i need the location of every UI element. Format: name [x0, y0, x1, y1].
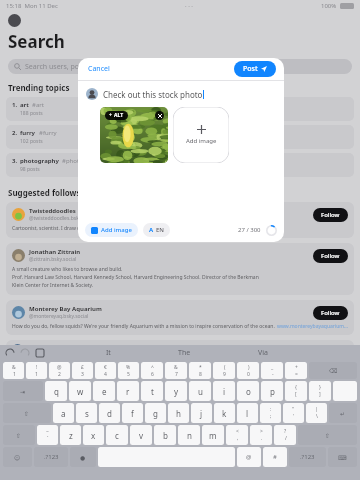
button[interactable]: Key	[333, 381, 357, 401]
button[interactable]: It	[102, 348, 115, 358]
button[interactable]: %	[118, 362, 139, 379]
button[interactable]: Tab	[3, 381, 43, 401]
button[interactable]: 1.	[6, 97, 354, 121]
button[interactable]: *	[189, 362, 211, 379]
button[interactable]: Follow	[313, 306, 348, 320]
button[interactable]: Dictation	[70, 447, 96, 467]
staticText: j	[200, 408, 203, 419]
button[interactable]: y	[165, 381, 187, 401]
button[interactable]: Twisteddoodles	[6, 202, 354, 238]
button[interactable]: ?	[274, 425, 296, 445]
button[interactable]: Profile	[8, 14, 21, 27]
button[interactable]: Monterey Bay Aquarium	[6, 300, 354, 335]
button[interactable]: b	[154, 425, 176, 445]
button[interactable]: @	[49, 362, 70, 379]
button[interactable]: a	[53, 403, 74, 423]
button[interactable]: u	[189, 381, 211, 401]
button[interactable]: Emoji	[3, 447, 32, 467]
button[interactable]: At sign	[237, 447, 261, 467]
button[interactable]: Jonathan Zittrain	[6, 243, 354, 295]
button[interactable]: Return	[329, 403, 357, 423]
button[interactable]: Follow	[313, 249, 348, 263]
button[interactable]: f	[122, 403, 143, 423]
button[interactable]: Via	[254, 348, 272, 358]
button[interactable]: c	[106, 425, 128, 445]
button[interactable]: Hide keyboard	[328, 447, 357, 467]
staticText: ,	[237, 435, 239, 442]
button[interactable]: ^	[141, 362, 163, 379]
button[interactable]: 2.	[6, 125, 354, 149]
staticText: photography	[20, 157, 59, 165]
button[interactable]: Search users, posts, feeds	[8, 59, 352, 74]
button[interactable]: Numbers	[289, 447, 326, 467]
button[interactable]: <	[226, 425, 248, 445]
button[interactable]: +	[105, 111, 128, 120]
button[interactable]: !	[26, 362, 47, 379]
button[interactable]: d	[99, 403, 120, 423]
button[interactable]: Backspace	[309, 362, 357, 379]
button[interactable]: w	[69, 381, 91, 401]
button[interactable]: q	[45, 381, 67, 401]
button[interactable]: Post	[234, 61, 276, 77]
button[interactable]: ~	[37, 425, 58, 445]
button[interactable]: Paste	[36, 349, 44, 357]
staticText: }	[319, 384, 321, 391]
button[interactable]: o	[237, 381, 259, 401]
button[interactable]: &	[3, 362, 24, 379]
button[interactable]: Follow	[313, 208, 348, 222]
button[interactable]: z	[60, 425, 81, 445]
button[interactable]: Numbers	[34, 447, 68, 467]
button[interactable]: {	[285, 381, 307, 401]
staticText: :	[270, 406, 272, 413]
button[interactable]: m	[202, 425, 224, 445]
button[interactable]: l	[237, 403, 258, 423]
button[interactable]: _	[261, 362, 283, 379]
button[interactable]: g	[145, 403, 166, 423]
button[interactable]: h	[168, 403, 189, 423]
button[interactable]: |	[306, 403, 327, 423]
button[interactable]: v	[130, 425, 152, 445]
staticText: +	[109, 112, 112, 119]
button[interactable]: Cancel	[86, 62, 112, 76]
button[interactable]: Redo	[21, 349, 29, 357]
button[interactable]: Add image	[173, 107, 229, 163]
button[interactable]: Hash	[263, 447, 287, 467]
button[interactable]: }	[309, 381, 331, 401]
button[interactable]: k	[214, 403, 235, 423]
button[interactable]: 3.	[6, 153, 354, 177]
button[interactable]: :	[260, 403, 281, 423]
button[interactable]: n	[178, 425, 200, 445]
button[interactable]: )	[237, 362, 259, 379]
button[interactable]: i	[213, 381, 235, 401]
button[interactable]: €	[95, 362, 116, 379]
button[interactable]: John Trasser, Jasso, suffering Philly sp…	[6, 340, 354, 362]
button[interactable]: Undo	[6, 349, 14, 357]
button[interactable]: Remove image	[155, 111, 164, 120]
button[interactable]: £	[72, 362, 93, 379]
button[interactable]: The	[174, 348, 195, 358]
button[interactable]: >	[250, 425, 272, 445]
staticText: €	[104, 364, 107, 371]
button[interactable]: +	[285, 362, 307, 379]
button[interactable]: (	[213, 362, 235, 379]
button[interactable]: "	[283, 403, 304, 423]
button[interactable]: Add image	[85, 223, 138, 237]
staticText: e	[102, 386, 107, 397]
staticText: %	[126, 364, 131, 371]
button[interactable]: p	[261, 381, 283, 401]
button[interactable]: t	[141, 381, 163, 401]
button[interactable]: e	[93, 381, 115, 401]
button[interactable]: &	[165, 362, 187, 379]
staticText: #photography	[62, 157, 103, 165]
button[interactable]: x	[83, 425, 104, 445]
button[interactable]: A	[143, 223, 170, 237]
button[interactable]: s	[76, 403, 97, 423]
button[interactable]: j	[191, 403, 212, 423]
button[interactable]: r	[117, 381, 139, 401]
staticText: Follow	[321, 309, 340, 317]
staticText: '	[293, 413, 295, 420]
